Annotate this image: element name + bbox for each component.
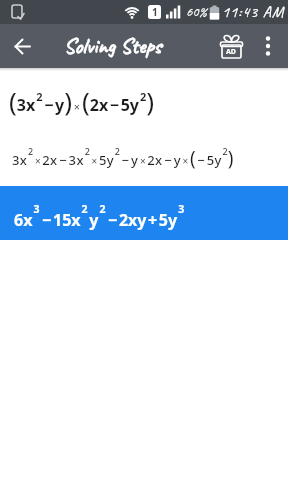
button[interactable] — [256, 31, 280, 61]
staticText: 60% — [186, 3, 207, 21]
button[interactable] — [6, 30, 38, 62]
button[interactable]: AD — [216, 31, 246, 61]
staticText: (3x 2 − y) × (2x − 5y 2) — [9, 83, 155, 118]
button[interactable]: 6x 3 − 15x 2 y 2 − 2xy + 5y 3 — [0, 186, 288, 240]
staticText: 1 — [152, 5, 158, 19]
staticText: AD — [226, 47, 236, 57]
staticText: 3x 2 × 2x − 3x 2 × 5y 2 − y × 2x − y × (… — [12, 145, 234, 171]
staticText: 11:43 AM — [222, 2, 284, 22]
staticText: Solving Steps — [64, 32, 162, 60]
staticText: 6x 3 − 15x 2 y 2 − 2xy + 5y 3 — [14, 202, 185, 230]
